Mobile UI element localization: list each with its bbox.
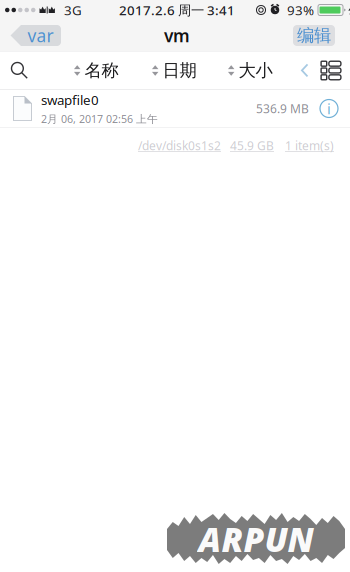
staticText: 日期 [162, 60, 196, 81]
staticText: 1 item(s) [285, 138, 334, 153]
button[interactable]: Search [11, 62, 28, 79]
button[interactable]: 名称 [74, 60, 118, 81]
button[interactable]: 大小 [228, 60, 272, 81]
staticText: 3G [64, 1, 82, 19]
staticText: i [327, 99, 331, 118]
staticText: swapfile0 [41, 91, 99, 109]
staticText: 编辑 [297, 25, 331, 46]
staticText: ARPUN [198, 517, 313, 561]
staticText: var [27, 24, 53, 47]
staticText: 2017.2.6 周一 3:41 [119, 1, 235, 19]
button[interactable]: 日期 [152, 60, 196, 81]
button[interactable]: Info [318, 97, 340, 119]
staticText: /dev/disk0s1s2 [138, 138, 221, 153]
staticText: 名称 [84, 60, 118, 81]
button[interactable]: var [10, 25, 61, 46]
button[interactable]: 编辑 [293, 25, 335, 46]
staticText: 536.9 MB [256, 100, 309, 116]
staticText: 45.9 GB [230, 138, 274, 153]
button[interactable]: Previous [301, 63, 309, 77]
staticText: vm [164, 24, 190, 47]
staticText: 2月 06, 2017 02:56 上午 [41, 112, 158, 126]
staticText: 大小 [238, 60, 272, 81]
staticText: 93% [287, 1, 314, 19]
button[interactable]: swapfile0 [0, 90, 350, 127]
button[interactable]: Change view [321, 61, 341, 80]
